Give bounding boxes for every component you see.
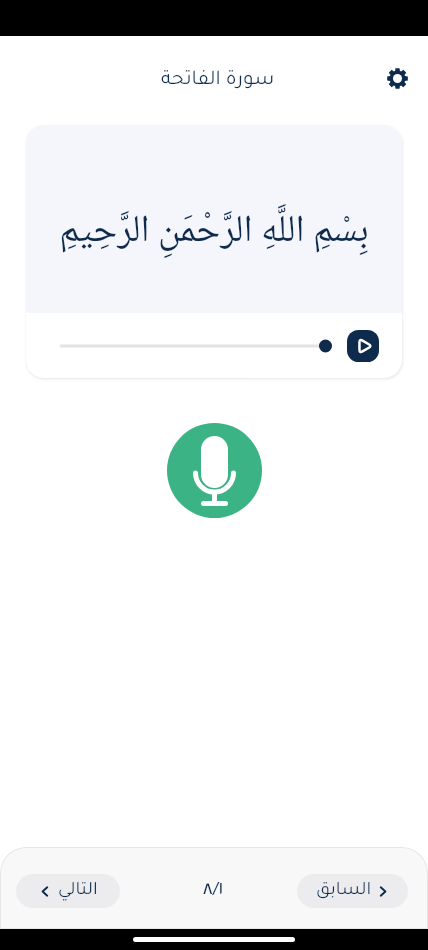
button[interactable]: Settings — [380, 61, 414, 95]
button[interactable]: Play — [347, 330, 379, 362]
button[interactable]: التالي — [16, 874, 120, 908]
staticText: ٨/١ — [203, 882, 223, 901]
staticText: السابق — [316, 882, 372, 901]
staticText: سورة الفاتحة — [161, 70, 275, 91]
staticText: بِسْمِ اللَّهِ الرَّحْمَنِ الرَّحِيمِ — [59, 200, 369, 265]
button[interactable]: Record — [167, 423, 262, 518]
button[interactable]: السابق — [297, 874, 408, 908]
staticText: التالي — [58, 882, 98, 901]
